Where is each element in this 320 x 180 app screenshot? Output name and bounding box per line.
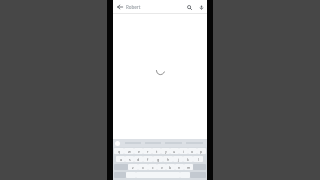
staticText: u (173, 149, 176, 154)
staticText: k (187, 157, 189, 162)
button[interactable]: j (173, 156, 183, 162)
staticText: g (157, 157, 160, 162)
staticText: c (152, 165, 154, 170)
staticText: l (198, 157, 199, 162)
staticText: q (118, 149, 121, 154)
staticText: p (200, 149, 203, 154)
staticText: f (147, 157, 149, 162)
button[interactable]: f (143, 156, 153, 162)
staticText: r (147, 149, 149, 154)
button[interactable]: v (157, 164, 166, 170)
button[interactable]: m (184, 164, 193, 170)
button[interactable]: Google (115, 141, 120, 146)
staticText: n (178, 165, 181, 170)
button[interactable]: Voice search (195, 1, 207, 13)
button[interactable]: t (152, 148, 161, 154)
staticText: m (187, 165, 191, 170)
button[interactable]: p (197, 148, 206, 154)
staticText: w (128, 149, 131, 154)
button[interactable]: d (134, 156, 143, 162)
button[interactable]: Robert (126, 0, 183, 13)
staticText: s (129, 157, 131, 162)
staticText: b (169, 165, 172, 170)
button[interactable]: o (188, 148, 197, 154)
button[interactable]: w (124, 148, 134, 154)
button[interactable]: b (166, 164, 175, 170)
button[interactable]: h (163, 156, 173, 162)
button[interactable]: k (183, 156, 193, 162)
staticText: t (156, 149, 158, 154)
staticText: d (137, 157, 140, 162)
button[interactable]: l (193, 156, 203, 162)
staticText: z (132, 165, 134, 170)
staticText: y (165, 149, 167, 154)
staticText: j (178, 157, 179, 162)
button[interactable]: y (161, 148, 170, 154)
button[interactable]: c (148, 164, 157, 170)
button[interactable]: i (179, 148, 188, 154)
staticText: h (167, 157, 170, 162)
button[interactable]: x (138, 164, 148, 170)
staticText: i (183, 149, 184, 154)
staticText: x (142, 165, 144, 170)
button[interactable]: g (153, 156, 163, 162)
button[interactable]: e (134, 148, 143, 154)
button[interactable]: a (116, 156, 125, 162)
button[interactable]: r (143, 148, 152, 154)
button[interactable]: Back (113, 0, 126, 13)
staticText: e (138, 149, 140, 154)
button[interactable]: q (114, 148, 124, 154)
staticText: v (161, 165, 163, 170)
button[interactable]: u (170, 148, 179, 154)
button[interactable]: n (175, 164, 184, 170)
staticText: Robert (126, 4, 141, 10)
button[interactable]: z (128, 164, 138, 170)
button[interactable]: s (125, 156, 134, 162)
button[interactable]: Search (183, 1, 195, 13)
staticText: a (120, 157, 122, 162)
staticText: o (191, 149, 194, 154)
